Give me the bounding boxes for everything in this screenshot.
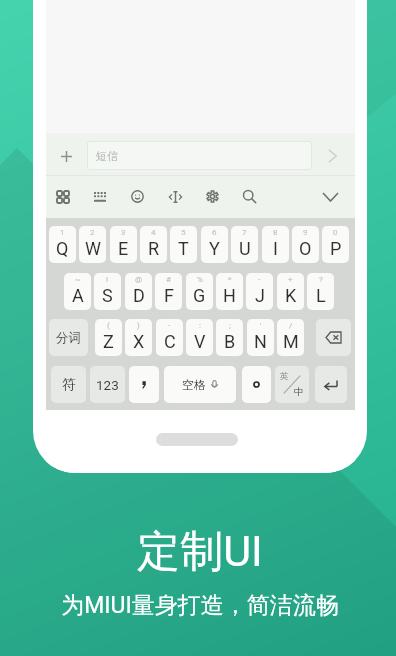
staticText: 8 bbox=[273, 228, 278, 237]
button[interactable]: Settings bbox=[194, 175, 230, 218]
button[interactable]: - bbox=[246, 273, 273, 310]
staticText: D bbox=[133, 285, 145, 306]
button[interactable]: 0 bbox=[322, 226, 349, 263]
staticText: ( bbox=[107, 321, 110, 330]
staticText: P bbox=[330, 238, 342, 259]
staticText: 中 bbox=[294, 386, 304, 398]
button[interactable]: Keyboard layout bbox=[82, 175, 118, 218]
button[interactable]: 6 bbox=[201, 226, 228, 263]
staticText: X bbox=[133, 331, 145, 352]
staticText: ~ bbox=[75, 275, 81, 284]
staticText: ' bbox=[260, 321, 262, 330]
staticText: C bbox=[164, 331, 176, 352]
staticText: T bbox=[178, 238, 189, 259]
button[interactable]: 1 bbox=[49, 226, 76, 263]
staticText: B bbox=[224, 331, 236, 352]
button[interactable]: 分词 bbox=[49, 319, 88, 356]
button[interactable]: 短信 bbox=[87, 141, 312, 170]
staticText: 空格 bbox=[182, 377, 206, 392]
staticText: L bbox=[316, 285, 326, 306]
button[interactable]: ? bbox=[307, 273, 334, 310]
staticText: U bbox=[239, 238, 251, 259]
staticText: / bbox=[289, 321, 293, 330]
staticText: + bbox=[288, 275, 293, 284]
staticText: @ bbox=[135, 275, 143, 284]
button[interactable]: 2 bbox=[79, 226, 106, 263]
button[interactable]: + bbox=[277, 273, 304, 310]
staticText: Z bbox=[103, 331, 114, 352]
staticText: 符 bbox=[62, 376, 76, 393]
staticText: 0 bbox=[333, 228, 338, 237]
button[interactable]: ! bbox=[94, 273, 121, 310]
staticText: V bbox=[194, 331, 206, 352]
button[interactable]: @ bbox=[125, 273, 152, 310]
staticText: 分词 bbox=[56, 330, 81, 346]
button[interactable]: 9 bbox=[292, 226, 319, 263]
staticText: % bbox=[197, 275, 203, 284]
staticText: 定制UI bbox=[137, 525, 263, 579]
staticText: F bbox=[164, 285, 174, 306]
button[interactable]: Search bbox=[231, 175, 267, 218]
button[interactable]: 符 bbox=[51, 366, 86, 403]
button[interactable]: ( bbox=[95, 319, 122, 356]
button[interactable]: 123 bbox=[90, 366, 125, 403]
staticText: W bbox=[85, 238, 101, 259]
button[interactable]: ~ bbox=[64, 273, 91, 310]
staticText: K bbox=[285, 285, 297, 306]
button[interactable]: - bbox=[156, 319, 183, 356]
staticText: : bbox=[199, 321, 201, 330]
staticText: ; bbox=[229, 321, 231, 330]
staticText: S bbox=[102, 285, 113, 306]
staticText: ) bbox=[137, 321, 140, 330]
staticText: 9 bbox=[303, 228, 308, 237]
staticText: ? bbox=[319, 275, 323, 284]
staticText: M bbox=[283, 331, 299, 352]
staticText: E bbox=[118, 238, 129, 259]
button[interactable]: : bbox=[186, 319, 213, 356]
button[interactable]: 8 bbox=[262, 226, 289, 263]
staticText: 短信 bbox=[96, 149, 118, 163]
button[interactable]: 7 bbox=[231, 226, 258, 263]
staticText: - bbox=[168, 321, 171, 330]
button[interactable]: 3 bbox=[110, 226, 137, 263]
staticText: J bbox=[255, 285, 265, 306]
button[interactable]: Add attachment bbox=[49, 137, 83, 175]
staticText: 5 bbox=[181, 228, 186, 237]
staticText: H bbox=[223, 285, 236, 306]
button[interactable]: 5 bbox=[170, 226, 197, 263]
button[interactable]: Switch input language bbox=[275, 366, 309, 403]
button[interactable]: Text editing bbox=[157, 175, 193, 218]
button[interactable]: / bbox=[277, 319, 304, 356]
staticText: 6 bbox=[212, 228, 217, 237]
staticText: ! bbox=[106, 275, 109, 284]
button[interactable]: Hide keyboard bbox=[312, 175, 348, 218]
staticText: Q bbox=[56, 238, 69, 259]
staticText: A bbox=[72, 285, 84, 306]
staticText: O bbox=[299, 238, 312, 259]
button[interactable]: Backspace bbox=[316, 319, 351, 356]
button[interactable]: 4 bbox=[140, 226, 167, 263]
staticText: I bbox=[273, 238, 278, 259]
staticText: * bbox=[228, 275, 232, 284]
button[interactable]: Emoji bbox=[119, 175, 155, 218]
button[interactable]: ' bbox=[247, 319, 274, 356]
button[interactable]: Send bbox=[316, 137, 349, 175]
button[interactable]: # bbox=[155, 273, 182, 310]
staticText: 英 bbox=[280, 371, 289, 382]
button[interactable]: Comma bbox=[129, 366, 159, 403]
button[interactable]: * bbox=[216, 273, 243, 310]
button[interactable]: 空格 bbox=[164, 366, 236, 403]
staticText: 3 bbox=[121, 228, 126, 237]
staticText: 7 bbox=[242, 228, 247, 237]
button[interactable]: Apps bbox=[45, 175, 81, 218]
staticText: N bbox=[254, 331, 267, 352]
staticText: 123 bbox=[96, 377, 119, 393]
staticText: R bbox=[148, 238, 160, 259]
button[interactable]: ; bbox=[216, 319, 243, 356]
staticText: 4 bbox=[151, 228, 156, 237]
button[interactable]: Enter bbox=[315, 366, 347, 403]
button[interactable]: ) bbox=[125, 319, 152, 356]
button[interactable]: % bbox=[186, 273, 213, 310]
staticText: # bbox=[166, 275, 171, 284]
button[interactable]: Period bbox=[242, 366, 271, 403]
